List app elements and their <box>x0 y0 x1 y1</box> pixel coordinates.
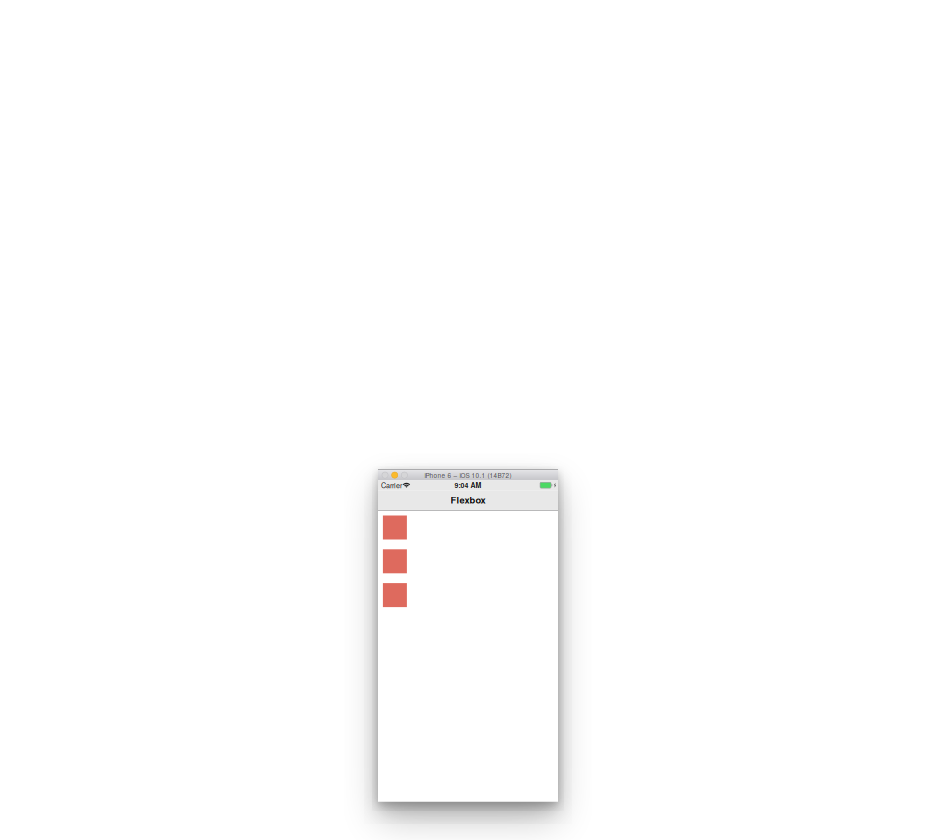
staticText: Carrier <box>381 480 402 490</box>
staticText: 9:04 AM <box>454 480 481 490</box>
button[interactable]: Zoom <box>401 472 407 478</box>
button[interactable]: Close <box>382 472 388 478</box>
staticText: Flexbox <box>450 493 485 506</box>
button[interactable]: Minimize <box>392 472 398 478</box>
staticText: iPhone 6 – iOS 10.1 (14B72) <box>424 471 511 480</box>
